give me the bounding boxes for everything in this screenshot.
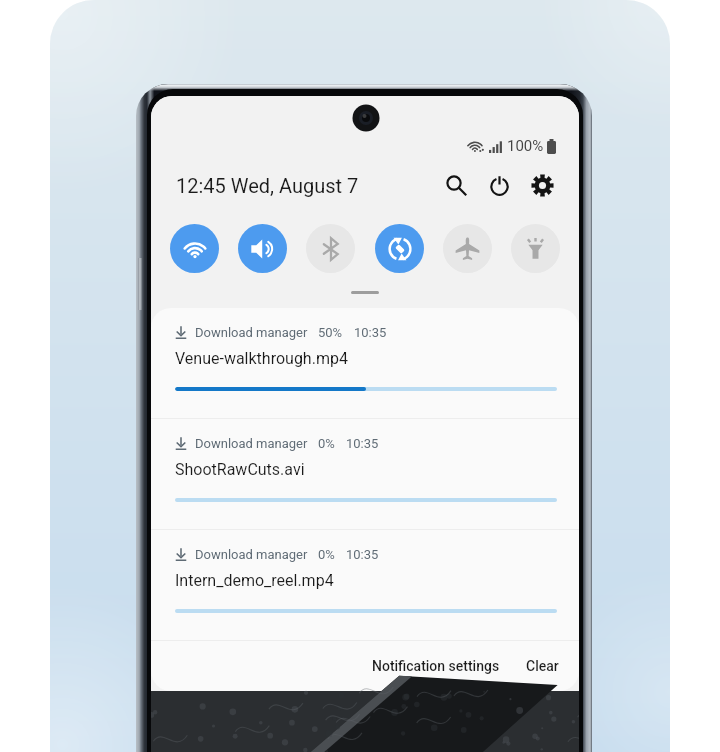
button[interactable]: Power bbox=[482, 168, 516, 202]
staticText: 10:35 bbox=[354, 325, 387, 340]
staticText: Download manager bbox=[195, 547, 308, 562]
button[interactable]: Auto rotate bbox=[375, 224, 424, 273]
button[interactable]: Search bbox=[439, 168, 473, 202]
button[interactable]: Download manager bbox=[151, 308, 579, 418]
staticText: 10:35 bbox=[346, 436, 379, 451]
button[interactable]: Notification settings bbox=[366, 649, 506, 683]
staticText: 100% bbox=[507, 137, 544, 155]
staticText: Download manager bbox=[195, 325, 308, 340]
button[interactable]: Clear bbox=[520, 649, 565, 683]
staticText: 0% bbox=[318, 547, 335, 562]
button[interactable]: Bluetooth bbox=[306, 224, 355, 273]
button[interactable]: Flashlight bbox=[511, 224, 560, 273]
button[interactable]: Settings bbox=[525, 168, 559, 202]
staticText: ShootRawCuts.avi bbox=[175, 460, 305, 479]
staticText: 10:35 bbox=[346, 547, 379, 562]
button[interactable]: Wi-Fi bbox=[170, 224, 219, 273]
staticText: Notification settings bbox=[372, 658, 500, 674]
staticText: Clear bbox=[526, 658, 559, 674]
button[interactable]: Download manager bbox=[151, 530, 579, 640]
staticText: 12:45 Wed, August 7 bbox=[176, 174, 359, 197]
staticText: Intern_demo_reel.mp4 bbox=[175, 571, 334, 590]
staticText: Venue-walkthrough.mp4 bbox=[175, 349, 348, 368]
staticText: Download manager bbox=[195, 436, 308, 451]
button[interactable]: Download manager bbox=[151, 419, 579, 529]
staticText: 0% bbox=[318, 436, 335, 451]
button[interactable]: Sound bbox=[238, 224, 287, 273]
staticText: 50% bbox=[318, 325, 343, 340]
button[interactable]: Airplane mode bbox=[443, 224, 492, 273]
